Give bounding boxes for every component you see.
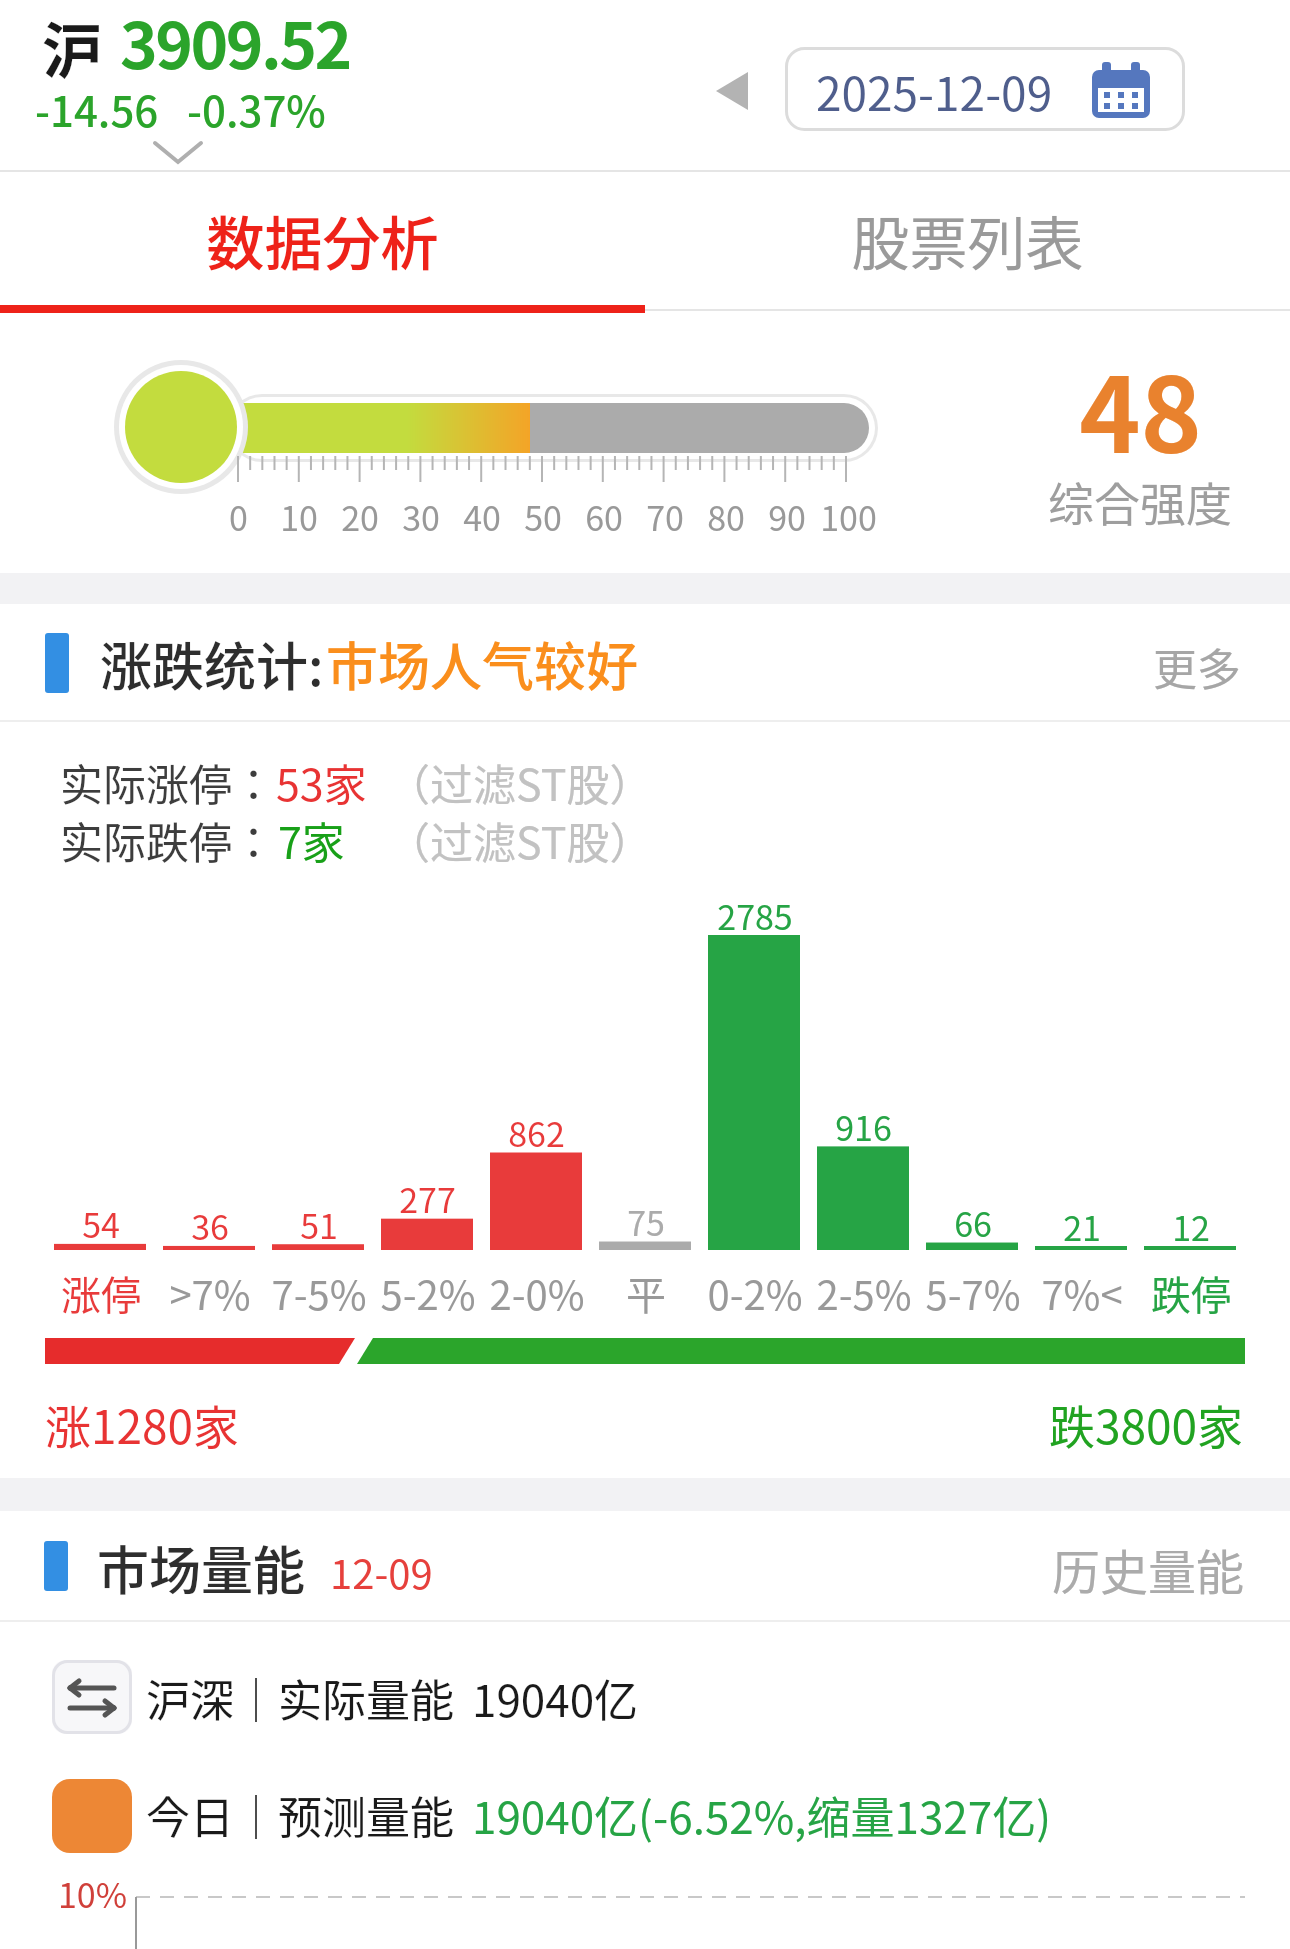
staticText: 19040亿 xyxy=(472,1666,639,1730)
staticText: 2785 xyxy=(717,891,793,940)
staticText: 10 xyxy=(280,492,318,541)
staticText: 市场人气较好 xyxy=(326,626,639,701)
staticText: 916 xyxy=(835,1102,892,1151)
staticText: 80 xyxy=(707,492,745,541)
staticText: 70 xyxy=(646,492,684,541)
staticText: 沪深｜实际量能 xyxy=(146,1666,454,1730)
staticText: 实际跌停： xyxy=(60,809,275,871)
staticText: 0 xyxy=(229,492,248,541)
staticText: 19040亿(-6.52%,缩量1327亿) xyxy=(472,1783,1052,1847)
staticText: 5-2% xyxy=(380,1264,476,1322)
staticText: 50 xyxy=(524,492,562,541)
staticText: 75 xyxy=(627,1197,665,1246)
staticText: 沪 xyxy=(42,3,102,90)
staticText: 2-5% xyxy=(816,1264,912,1322)
staticText: （过滤ST股） xyxy=(387,809,653,871)
staticText: 10% xyxy=(58,1869,128,1918)
staticText: -0.37% xyxy=(187,78,326,139)
staticText: 7家 xyxy=(278,809,345,871)
staticText: 54 xyxy=(82,1199,120,1248)
staticText: 66 xyxy=(954,1198,992,1247)
staticText: 更多 xyxy=(1153,635,1241,699)
staticText: 90 xyxy=(768,492,806,541)
staticText: 21 xyxy=(1063,1202,1101,1251)
staticText: 48 xyxy=(1079,332,1202,483)
staticText: 平 xyxy=(626,1264,666,1322)
staticText: 今日｜预测量能 xyxy=(146,1783,454,1847)
staticText: 40 xyxy=(463,492,501,541)
staticText: 60 xyxy=(585,492,623,541)
staticText: 涨1280家 xyxy=(45,1391,240,1458)
staticText: >7% xyxy=(169,1264,251,1322)
staticText: 51 xyxy=(300,1200,338,1249)
staticText: 12-09 xyxy=(330,1543,433,1601)
staticText: 跌停 xyxy=(1151,1264,1231,1322)
staticText: 12 xyxy=(1172,1202,1210,1251)
staticText: （过滤ST股） xyxy=(387,751,653,813)
staticText: 7%< xyxy=(1041,1264,1123,1322)
staticText: 0-2% xyxy=(707,1264,803,1322)
staticText: 2025-12-09 xyxy=(816,58,1053,125)
staticText: 涨跌统计: xyxy=(100,626,324,701)
staticText: 数据分析 xyxy=(206,198,439,282)
staticText: 涨停 xyxy=(61,1264,141,1322)
staticText: 30 xyxy=(402,492,440,541)
staticText: 历史量能 xyxy=(1052,1534,1245,1604)
staticText: 100 xyxy=(820,492,877,541)
staticText: 实际涨停： xyxy=(60,751,275,813)
staticText: 20 xyxy=(341,492,379,541)
staticText: -14.56 xyxy=(35,78,159,139)
staticText: 3909.52 xyxy=(120,0,350,88)
staticText: 5-7% xyxy=(925,1264,1021,1322)
staticText: 36 xyxy=(191,1201,229,1250)
staticText: 2-0% xyxy=(489,1264,585,1322)
staticText: 53家 xyxy=(276,751,367,813)
staticText: 862 xyxy=(508,1108,565,1157)
staticText: 市场量能 xyxy=(97,1530,306,1605)
staticText: 综合强度 xyxy=(1048,468,1232,535)
staticText: 277 xyxy=(399,1174,456,1223)
staticText: 7-5% xyxy=(271,1264,367,1322)
staticText: 股票列表 xyxy=(851,198,1084,282)
staticText: 跌3800家 xyxy=(1049,1391,1244,1458)
